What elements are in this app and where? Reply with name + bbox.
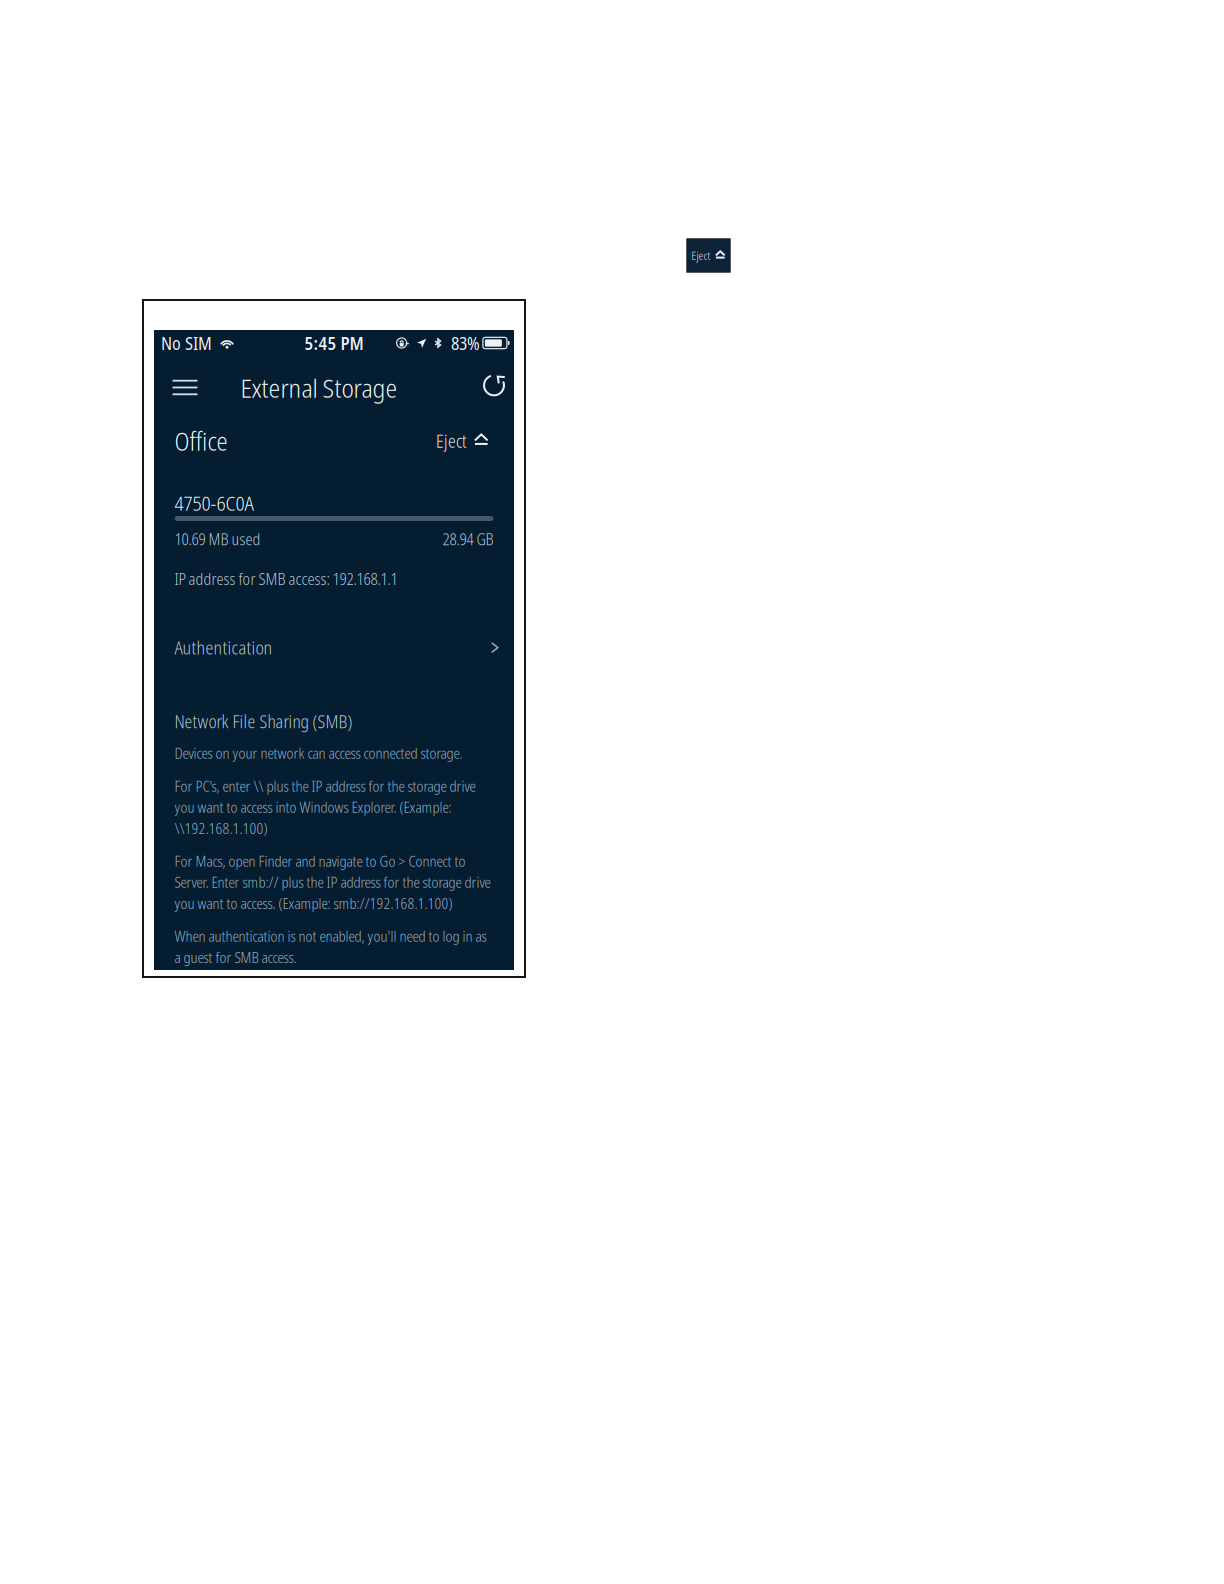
staticText: Office (174, 424, 227, 458)
staticText: For PC's, enter \⁠\ plus the IP address … (174, 776, 475, 838)
button[interactable]: Refresh (476, 366, 511, 408)
staticText: For Macs, open Finder and navigate to Go… (174, 851, 490, 913)
staticText: Eject (691, 248, 710, 263)
staticText: Devices on your network can access conne… (174, 743, 462, 763)
button[interactable]: Menu (163, 366, 206, 408)
staticText: Network File Sharing (SMB) (174, 710, 352, 733)
button[interactable]: Authentication (154, 626, 514, 670)
staticText: 83% (451, 331, 480, 355)
staticText: 5:45 PM (304, 331, 363, 355)
staticText: IP address for SMB access: 192.168.1.1 (174, 568, 397, 590)
button[interactable]: Eject (424, 420, 488, 462)
staticText: 4750-6C0A (174, 489, 253, 517)
staticText: 28.94 GB (442, 528, 493, 550)
staticText: Authentication (174, 635, 272, 660)
staticText: When authentication is not enabled, you'… (174, 926, 486, 967)
staticText: 10.69 MB used (174, 528, 260, 550)
staticText: External Storage (240, 370, 397, 405)
staticText: Eject (436, 429, 467, 453)
staticText: No SIM (161, 331, 212, 355)
